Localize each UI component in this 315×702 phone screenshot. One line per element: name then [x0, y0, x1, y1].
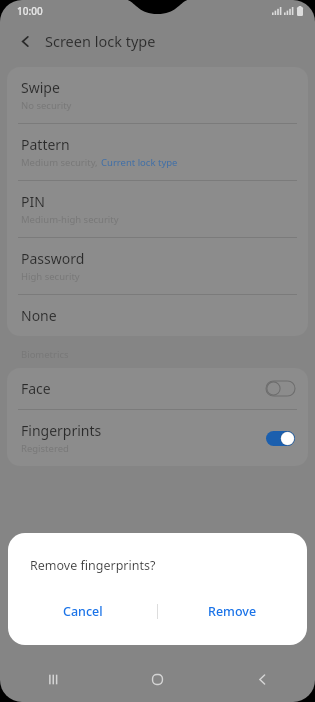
button[interactable]: Back	[210, 657, 315, 702]
button[interactable]: Home	[105, 657, 210, 702]
button[interactable]: PIN	[7, 181, 308, 237]
button[interactable]: Remove	[158, 594, 307, 628]
staticText: PIN	[21, 192, 45, 211]
staticText: Pattern	[21, 135, 70, 154]
button[interactable]: Fingerprints	[7, 410, 308, 466]
button[interactable]: Recent apps	[0, 657, 105, 702]
staticText: Registered	[21, 442, 69, 455]
staticText: Remove	[208, 603, 257, 620]
staticText: Biometrics	[21, 348, 69, 361]
staticText: Fingerprints	[21, 421, 102, 440]
staticText: Medium-high security	[21, 213, 119, 226]
staticText: Remove fingerprints?	[30, 557, 156, 574]
staticText: Current lock type	[101, 156, 178, 169]
staticText: No security	[21, 99, 72, 112]
staticText: None	[21, 306, 57, 325]
staticText: Password	[21, 249, 85, 268]
button[interactable]: Password	[7, 238, 308, 294]
button[interactable]: None	[7, 295, 308, 336]
button[interactable]: Cancel	[8, 594, 157, 628]
staticText: 10:00	[17, 4, 43, 18]
staticText: High security	[21, 270, 80, 283]
button[interactable]: Turn on	[266, 381, 295, 396]
staticText: Cancel	[63, 603, 103, 620]
staticText: Screen lock type	[45, 31, 156, 51]
button[interactable]: Swipe	[7, 67, 308, 123]
staticText: Swipe	[21, 78, 60, 97]
button[interactable]: Pattern	[7, 124, 308, 180]
staticText: Face	[21, 379, 51, 398]
button[interactable]: Turn off	[266, 431, 295, 446]
staticText: Medium security,	[21, 156, 101, 169]
button[interactable]: Back	[10, 26, 40, 56]
button[interactable]: Face	[7, 368, 308, 409]
